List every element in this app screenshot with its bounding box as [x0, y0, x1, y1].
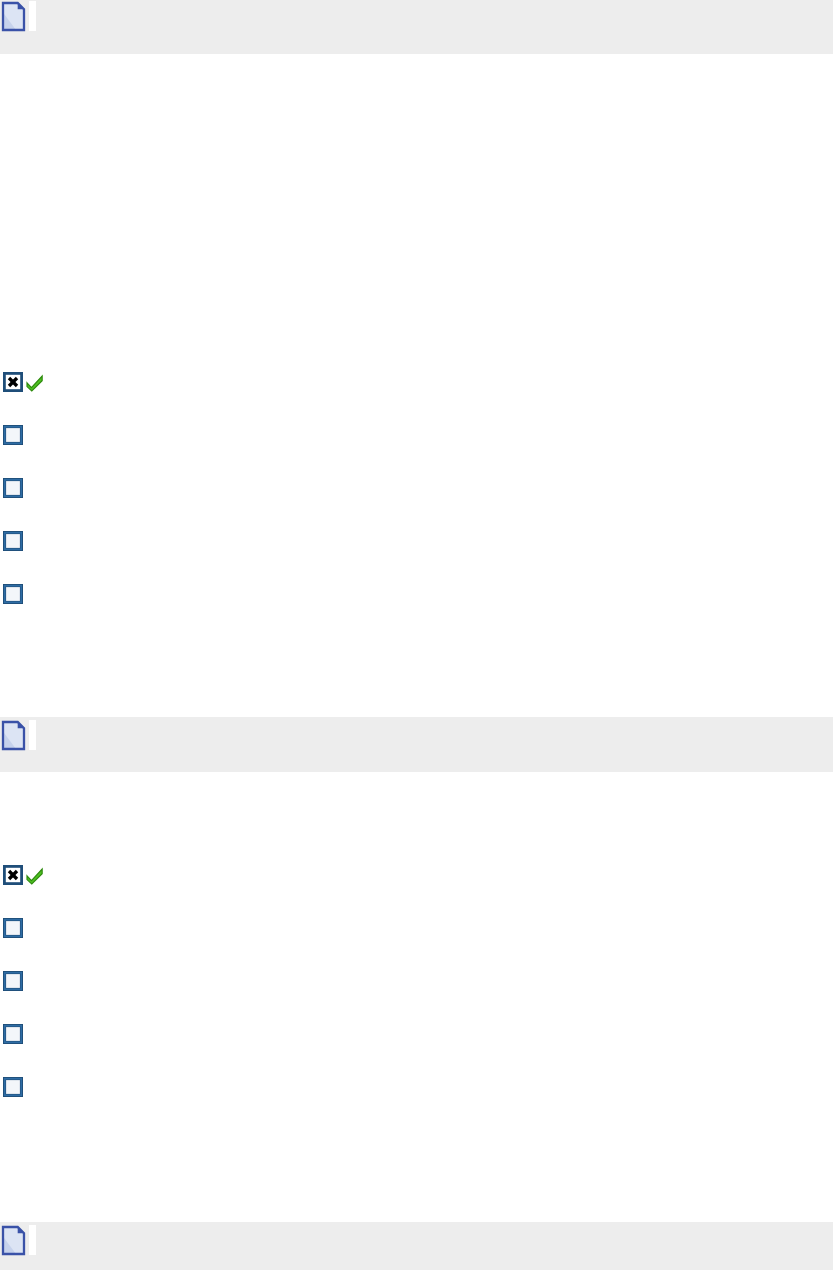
button[interactable]: Option 3 of group 1 [0, 472, 833, 525]
button[interactable]: Section 1 heading [0, 0, 833, 54]
button[interactable]: Section 2 heading [0, 717, 833, 772]
button[interactable]: Section 3 heading [0, 1222, 833, 1270]
button[interactable]: Option 2 of group 1 [0, 419, 833, 472]
button[interactable]: Option 1 of group 1, selected [0, 366, 833, 419]
button[interactable]: Option 5 of group 1 [0, 578, 833, 631]
button[interactable]: Option 1 of group 2, selected [0, 859, 833, 912]
button[interactable]: Option 5 of group 2 [0, 1071, 833, 1124]
button[interactable]: Option 2 of group 2 [0, 912, 833, 965]
button[interactable]: Option 4 of group 1 [0, 525, 833, 578]
button[interactable]: Option 4 of group 2 [0, 1018, 833, 1071]
button[interactable]: Option 3 of group 2 [0, 965, 833, 1018]
